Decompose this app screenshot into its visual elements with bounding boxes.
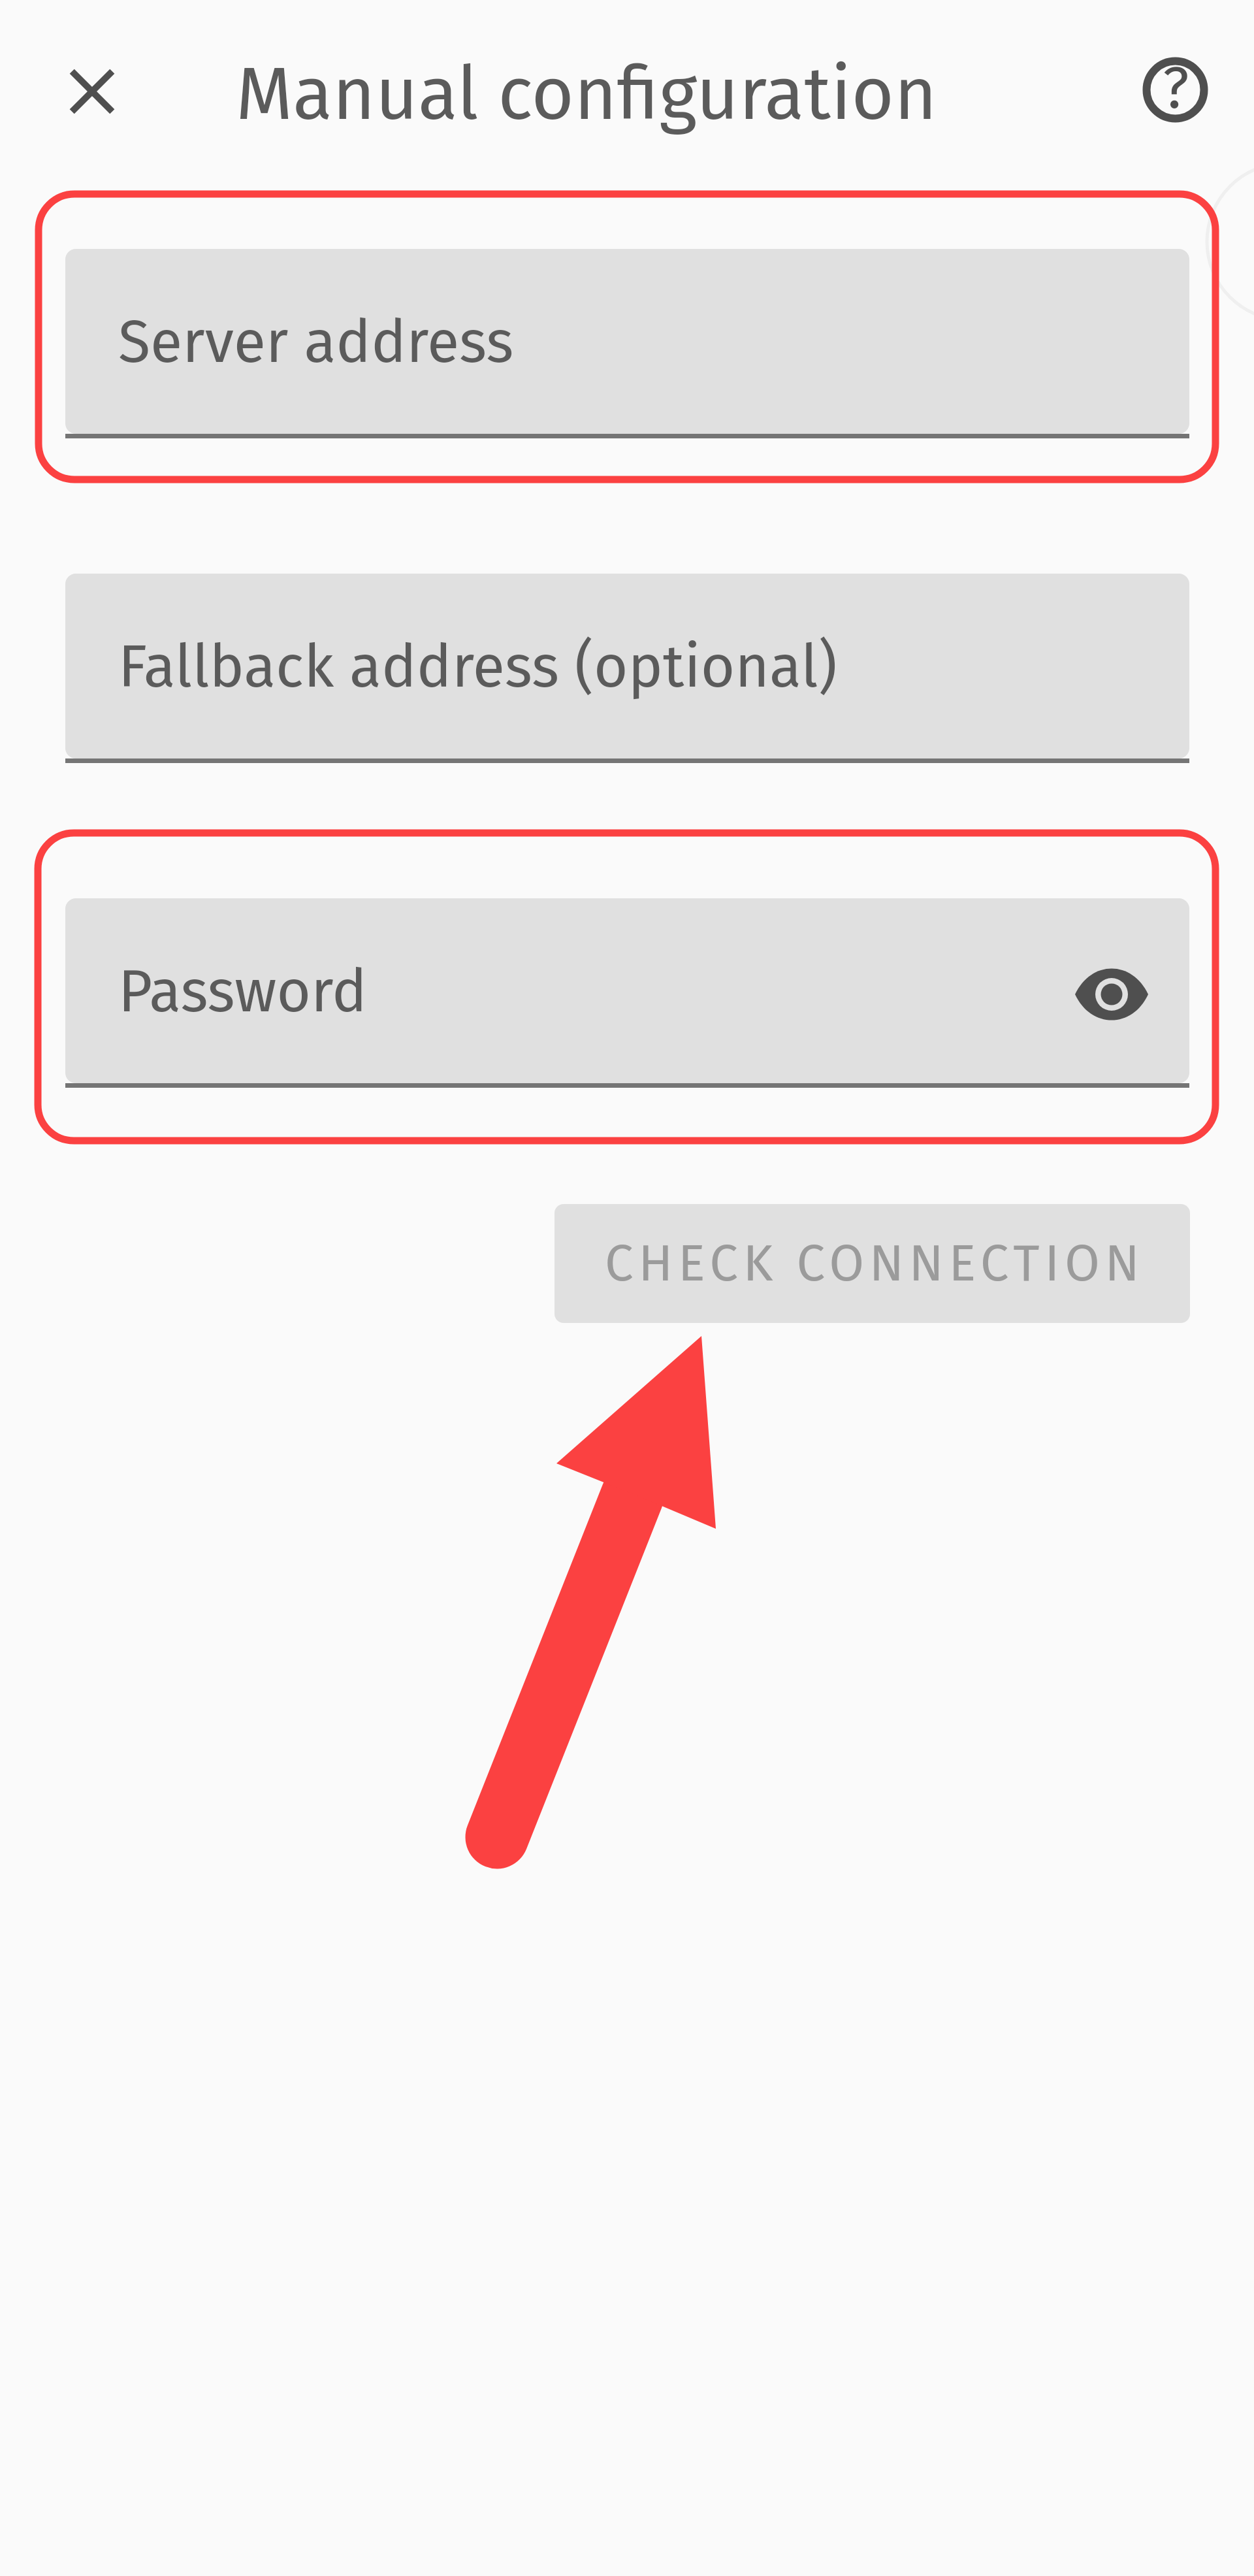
button[interactable]: Fallback address (optional) <box>65 574 1189 763</box>
button[interactable]: Show password <box>1075 968 1148 1020</box>
button[interactable]: Password <box>65 898 1189 1088</box>
staticText: Manual configuration <box>236 50 937 138</box>
button[interactable]: CHECK CONNECTION <box>555 1204 1190 1323</box>
staticText: Fallback address (optional) <box>118 632 837 702</box>
staticText: Password <box>118 956 367 1027</box>
button[interactable]: Server address <box>65 249 1189 438</box>
button[interactable]: Help <box>1125 40 1225 140</box>
staticText: Server address <box>118 307 514 378</box>
staticText: ? <box>1163 54 1189 123</box>
button[interactable]: Close <box>42 42 142 141</box>
staticText: CHECK CONNECTION <box>605 1233 1145 1294</box>
